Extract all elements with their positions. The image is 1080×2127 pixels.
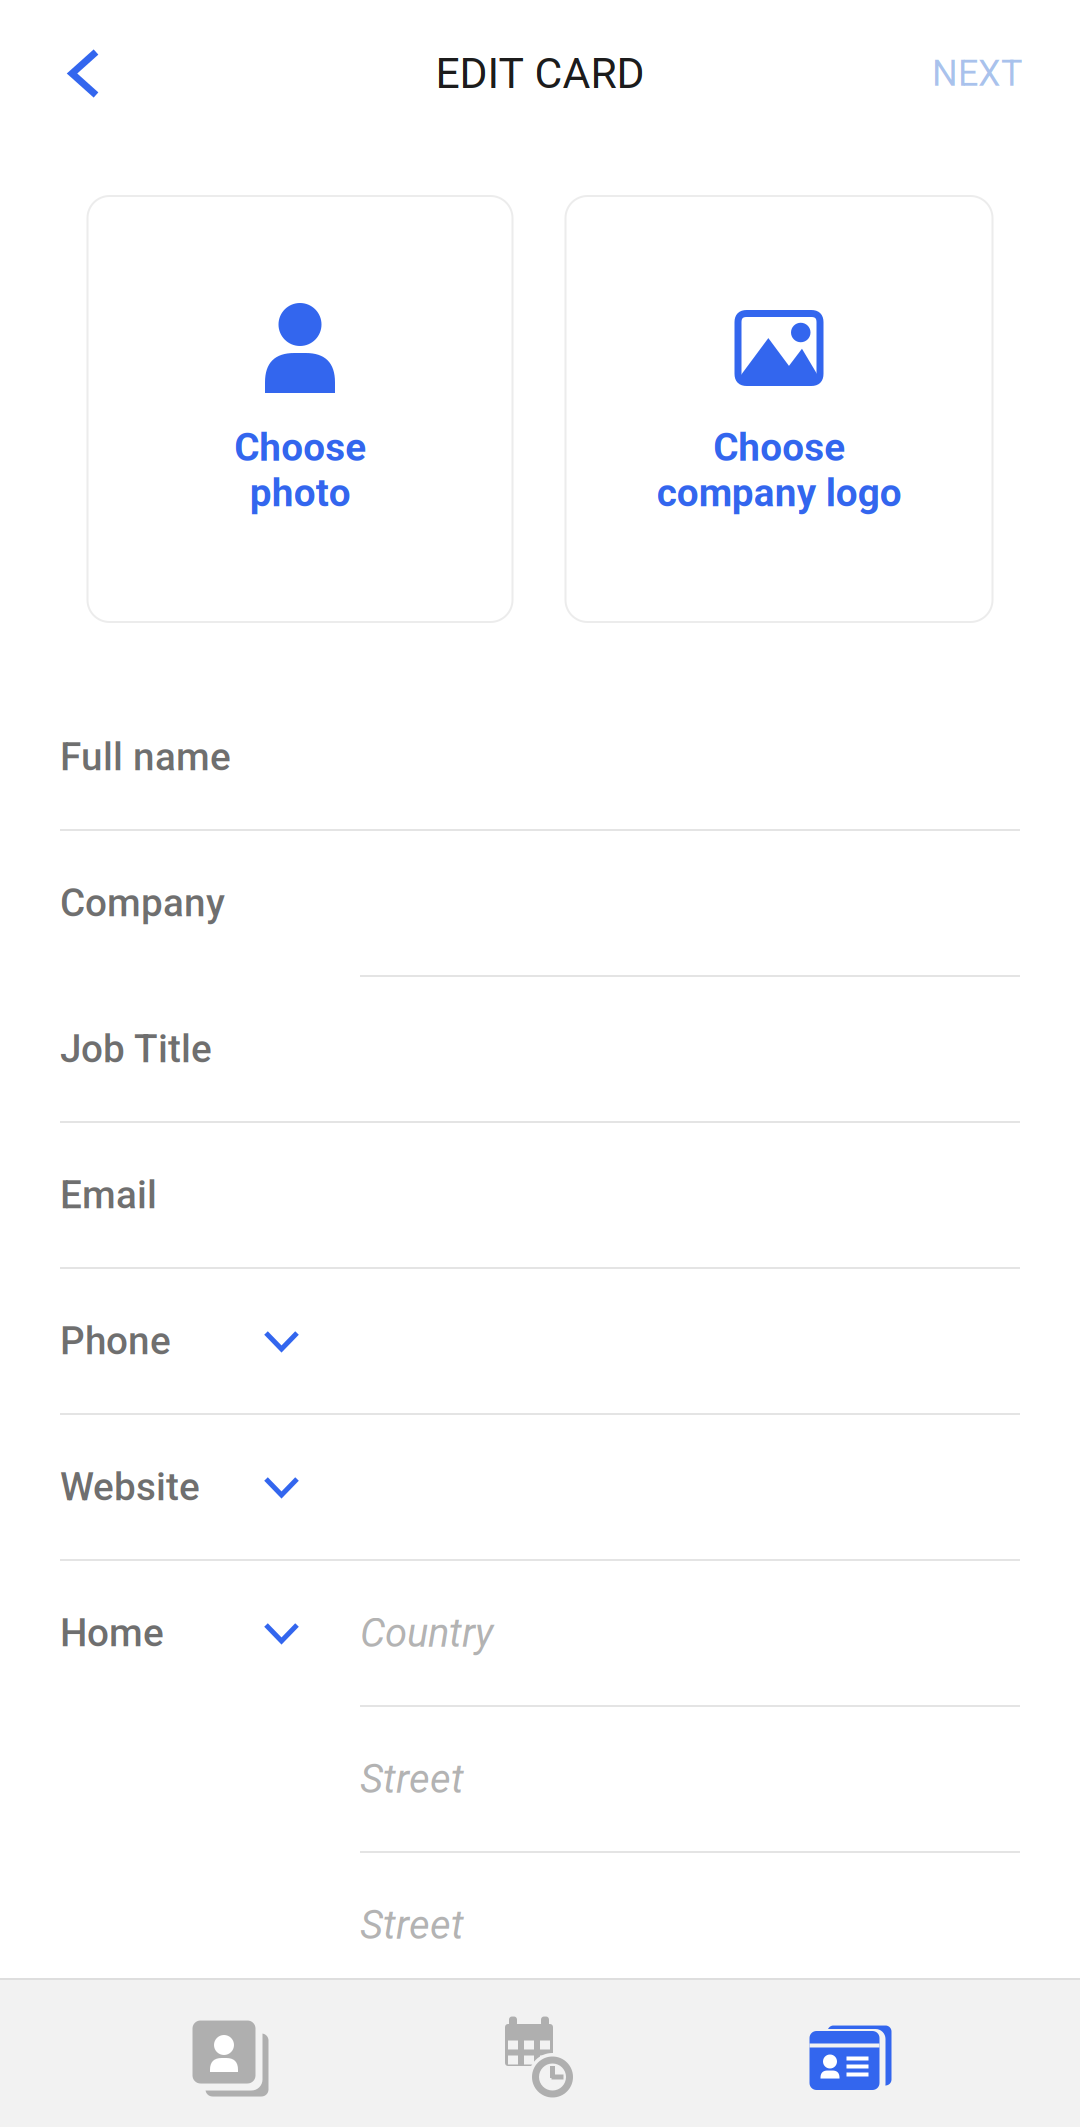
- button[interactable]: Choose company logo: [565, 196, 992, 622]
- staticText: Phone: [60, 1318, 171, 1364]
- button[interactable]: Schedule: [384, 1980, 691, 2127]
- button[interactable]: NEXT: [888, 12, 1080, 135]
- staticText: Company: [60, 880, 225, 926]
- staticText: NEXT: [932, 52, 1022, 95]
- button[interactable]: Cards: [691, 1980, 998, 2127]
- staticText: Email: [60, 1172, 157, 1218]
- staticText: Job Title: [60, 1026, 212, 1072]
- staticText: Website: [60, 1464, 200, 1510]
- staticText: Full name: [60, 734, 231, 780]
- staticText: Choose company logo: [656, 425, 901, 516]
- staticText: EDIT CARD: [435, 48, 644, 98]
- staticText: Street: [360, 1756, 464, 1802]
- staticText: Country: [360, 1610, 493, 1656]
- button[interactable]: Contacts: [77, 1980, 384, 2127]
- button[interactable]: Choose photo: [87, 196, 512, 622]
- staticText: Home: [60, 1610, 164, 1656]
- button[interactable]: Back: [0, 12, 149, 135]
- staticText: Choose photo: [234, 425, 366, 516]
- staticText: Street: [360, 1902, 464, 1948]
